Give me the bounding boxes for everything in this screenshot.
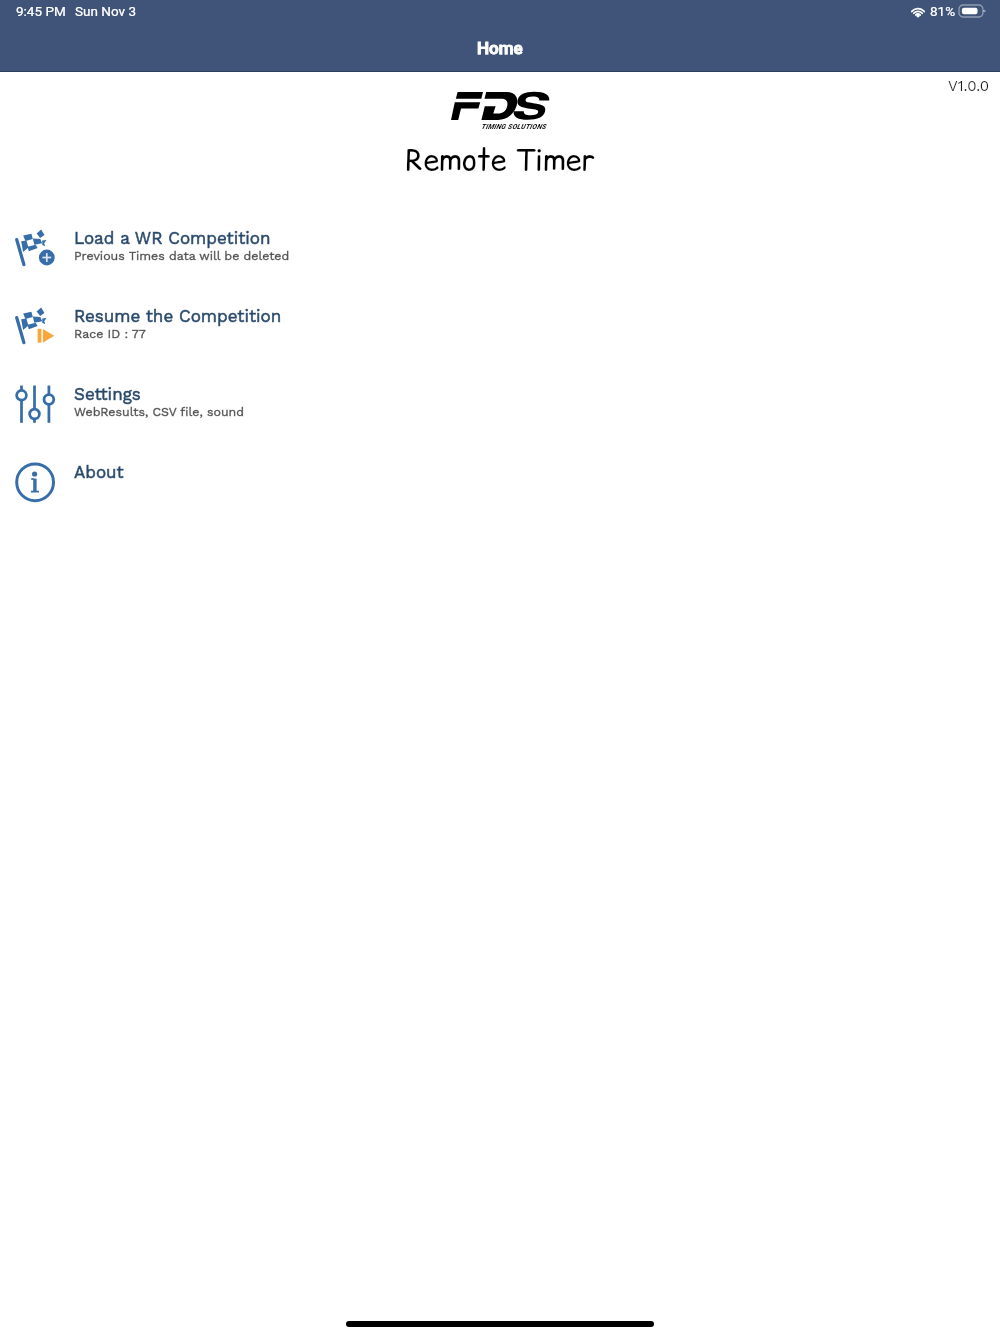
button[interactable]: Settings xyxy=(0,381,1000,459)
other: About xyxy=(15,462,55,502)
other: Load a WR Competition xyxy=(15,228,55,268)
staticText: Previous Times data will be deleted xyxy=(74,248,290,263)
button[interactable]: About xyxy=(0,459,1000,537)
staticText: 9:45 PM xyxy=(16,3,66,19)
staticText: Settings xyxy=(74,384,141,404)
staticText: Remote Timer xyxy=(405,139,596,179)
staticText: Sun Nov 3 xyxy=(75,3,136,19)
staticText: Resume the Competition xyxy=(74,306,282,326)
staticText: Home xyxy=(477,38,523,58)
staticText: About xyxy=(74,462,124,482)
staticText: Load a WR Competition xyxy=(74,228,271,248)
staticText: Resume the Competition xyxy=(74,306,282,326)
button[interactable]: Resume the Competition xyxy=(0,303,1000,381)
staticText: WebResults, CSV file, sound xyxy=(74,404,244,419)
staticText: Settings xyxy=(74,384,141,404)
staticText: Previous Times data will be deleted xyxy=(74,248,290,263)
staticText: 81% xyxy=(930,3,956,19)
button[interactable]: Load a WR Competition xyxy=(0,225,1000,303)
staticText: Home xyxy=(477,38,523,58)
staticText: WebResults, CSV file, sound xyxy=(74,404,244,419)
other: Resume the Competition xyxy=(15,306,55,346)
staticText: Race ID : 77 xyxy=(74,326,146,341)
staticText: About xyxy=(74,462,124,482)
staticText: Race ID : 77 xyxy=(74,326,146,341)
staticText: TIMING SOLUTIONS xyxy=(481,123,546,131)
staticText: Load a WR Competition xyxy=(74,228,271,248)
other: Settings xyxy=(15,384,55,424)
staticText: V1.0.0 xyxy=(948,77,990,95)
